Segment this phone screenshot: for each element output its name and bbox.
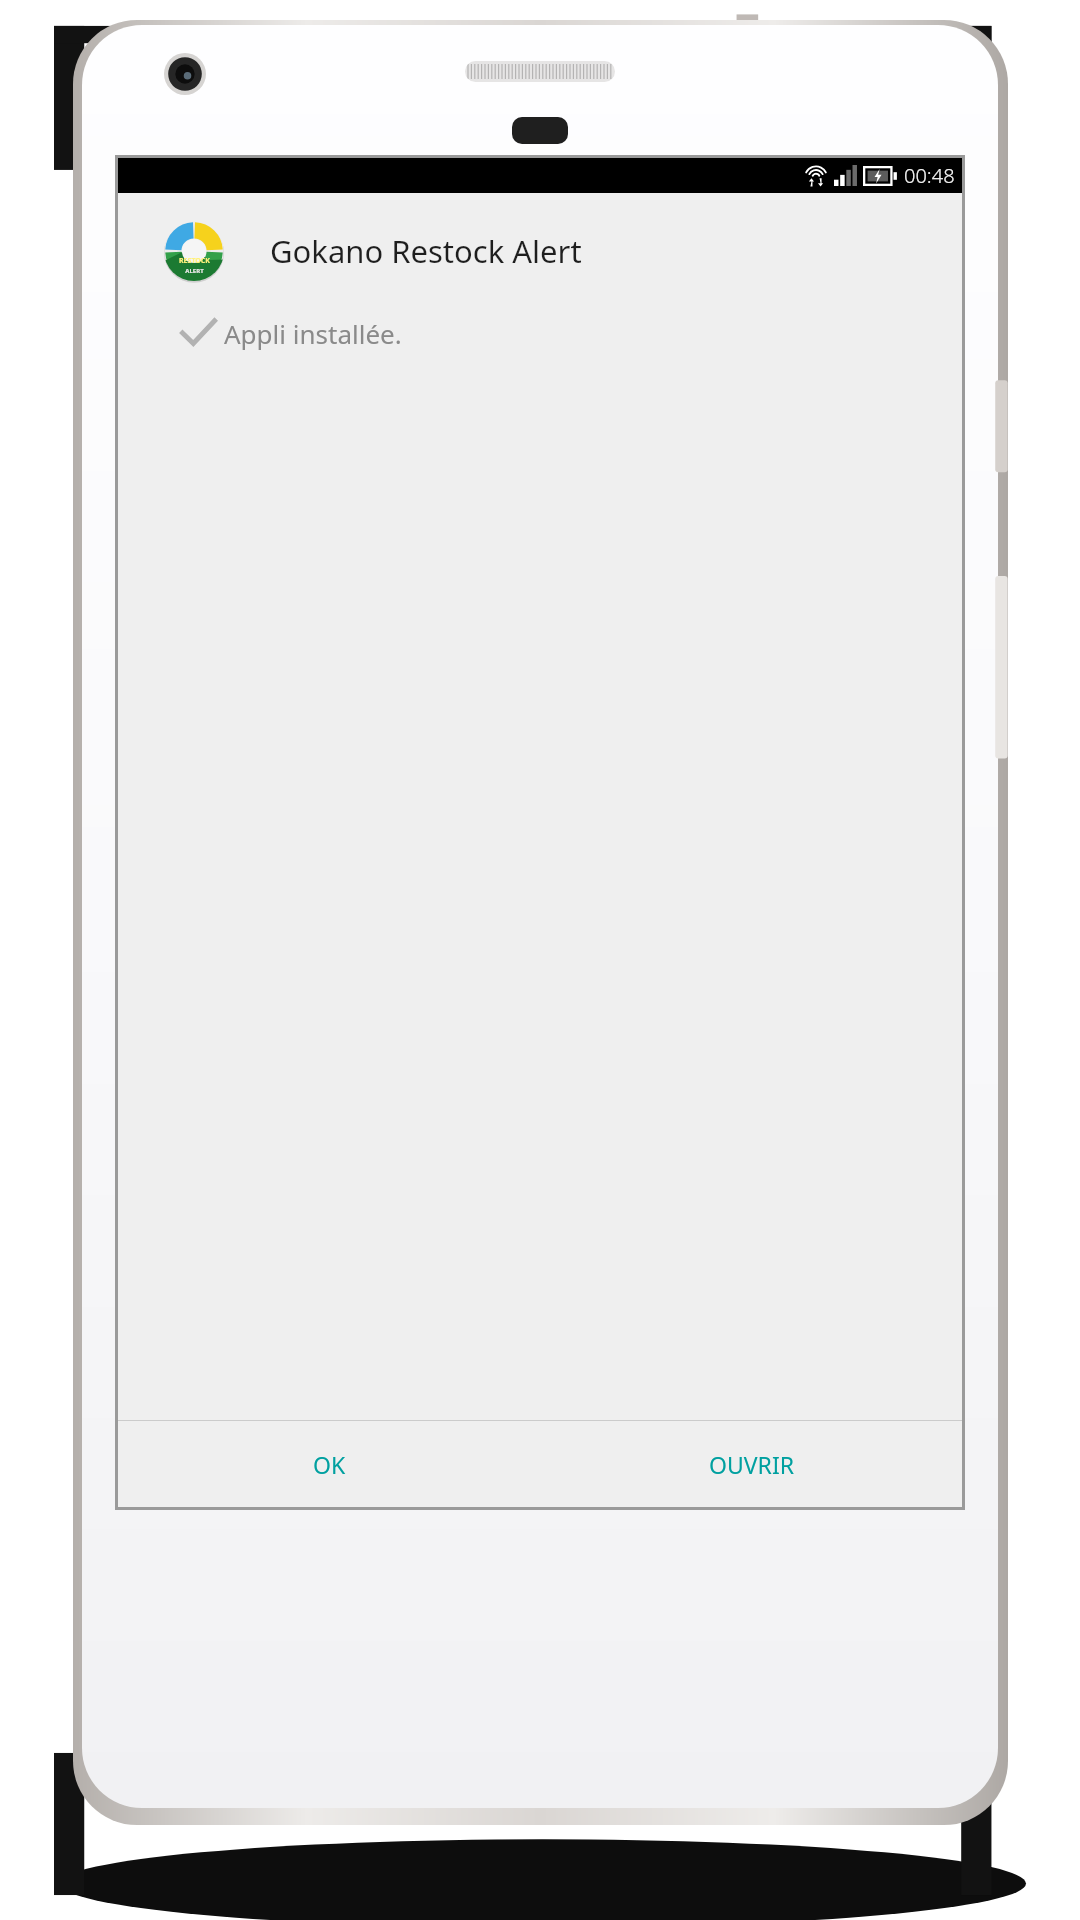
staticText: Gokano Restock Alert xyxy=(270,230,582,272)
staticText: Appli installée. xyxy=(224,316,402,351)
button[interactable]: OK xyxy=(118,1421,540,1507)
staticText: RESTOCK xyxy=(179,256,210,266)
staticText: ALERT xyxy=(185,267,204,275)
other: Installed xyxy=(180,315,216,351)
staticText: OK xyxy=(313,1449,346,1480)
button[interactable]: OUVRIR xyxy=(540,1421,962,1507)
staticText: 00:48 xyxy=(904,162,955,189)
staticText: OUVRIR xyxy=(709,1449,794,1480)
